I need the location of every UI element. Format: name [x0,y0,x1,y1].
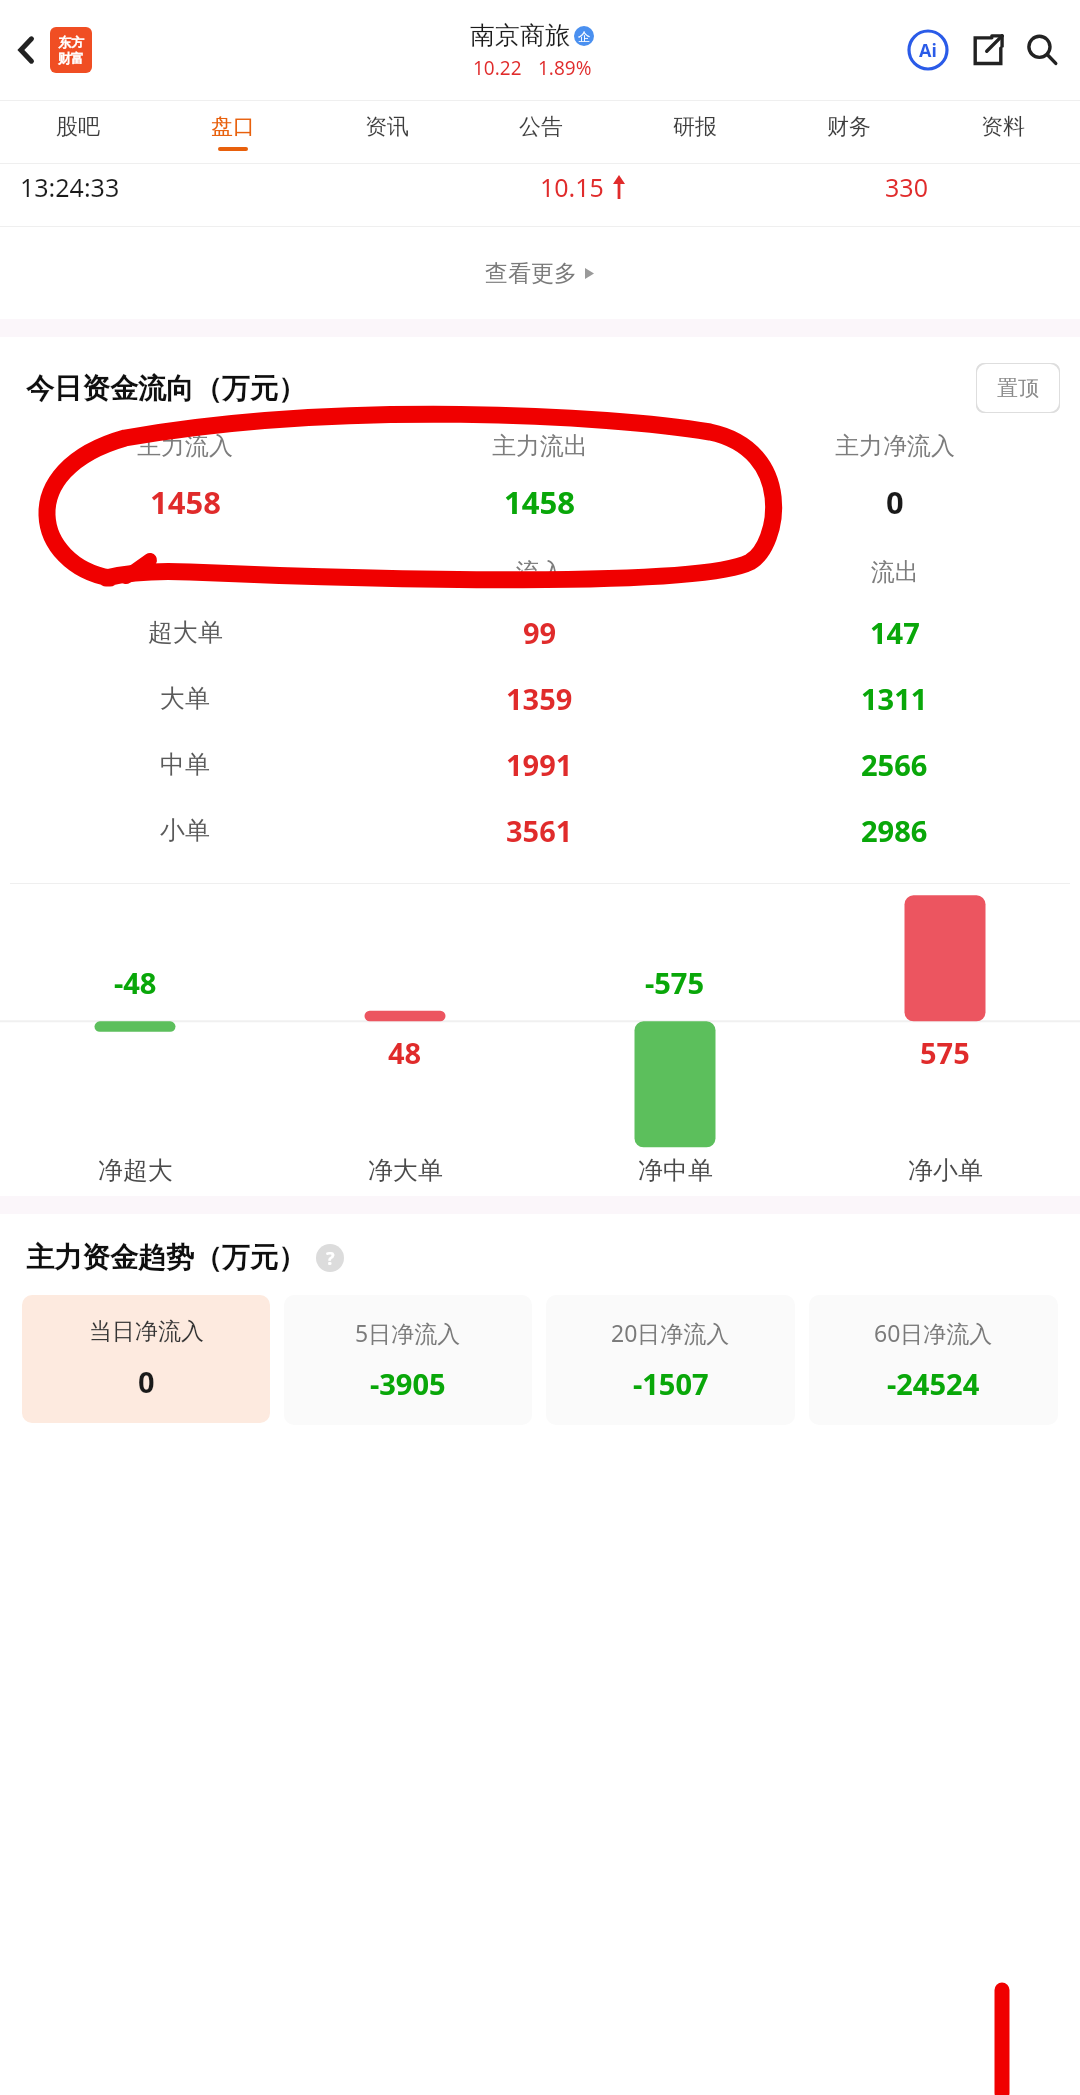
staticText: 净超大 [98,1155,173,1186]
staticText: 0 [138,1362,155,1401]
staticText: ? [326,1246,335,1271]
button[interactable]: 盘口 [155,101,310,163]
button[interactable]: Back [2,25,52,75]
button[interactable]: 主力流入 [8,431,362,523]
button[interactable]: 资讯 [310,101,464,163]
staticText: 1458 [150,481,221,523]
staticText: 盘口 [211,113,255,141]
button[interactable]: 置顶 [976,363,1060,413]
staticText: 财务 [827,113,871,141]
staticText: 主力流入 [137,431,233,461]
staticText: 575 [920,1033,970,1072]
button[interactable]: 60日净流入 [809,1295,1058,1425]
staticText: 3561 [506,811,573,850]
button[interactable]: Search [1016,24,1068,76]
staticText: 净小单 [908,1155,983,1186]
button[interactable]: 查看更多 [0,227,1080,319]
staticText: -24524 [887,1364,980,1403]
staticText: 48 [388,1033,422,1072]
staticText: 1.89% [538,55,592,81]
staticText: 13:24:33 [20,170,412,204]
staticText: 1311 [861,679,928,718]
staticText: -48 [114,963,157,1002]
staticText: 流入 [516,557,564,587]
staticText: 主力净流入 [835,431,955,461]
staticText: 南京商旅 [470,20,570,51]
staticText: 2566 [861,745,928,784]
staticText: 1991 [506,745,573,784]
staticText: 研报 [673,113,717,141]
button[interactable]: 20日净流入 [546,1295,795,1425]
staticText: 330 [753,170,1060,204]
staticText: 主力资金趋势（万元） [26,1240,306,1275]
button[interactable]: 主力流出 [362,431,717,523]
staticText: 置顶 [997,375,1039,401]
staticText: 60日净流入 [874,1317,993,1348]
staticText: 查看更多 [485,259,577,288]
button[interactable]: AI assistant [902,24,954,76]
staticText: 今日资金流向（万元） [26,371,306,406]
staticText: 企 [578,29,590,44]
staticText: 2986 [861,811,928,850]
button[interactable]: Help [316,1244,344,1272]
staticText: 5日净流入 [355,1317,461,1348]
staticText: 20日净流入 [611,1317,730,1348]
button[interactable]: 5日净流入 [284,1295,532,1425]
button[interactable]: 主力净流入 [717,431,1072,523]
staticText: 公告 [519,113,563,141]
staticText: 大单 [160,683,210,714]
staticText: 99 [523,613,557,652]
staticText: 主力流出 [492,431,588,461]
staticText: 中单 [160,749,210,780]
staticText: 10.22 [473,55,522,81]
button[interactable]: 超大单 [8,599,1072,665]
button[interactable]: Share [962,24,1014,76]
button[interactable]: 小单 [8,797,1072,863]
staticText: -3905 [370,1364,446,1403]
staticText: 财富 [58,50,84,66]
button[interactable]: East Money [50,27,92,73]
staticText: 净大单 [368,1155,443,1186]
button[interactable]: 大单 [8,665,1072,731]
staticText: 超大单 [148,617,223,648]
staticText: 资讯 [365,113,409,141]
button[interactable]: 资料 [926,101,1080,163]
staticText: 东方 [58,34,84,50]
button[interactable]: 中单 [8,731,1072,797]
staticText: Ai [919,38,937,63]
staticText: -1507 [633,1364,709,1403]
staticText: 流出 [871,557,919,587]
staticText: 1359 [506,679,573,718]
staticText: 小单 [160,815,210,846]
staticText: 净中单 [638,1155,713,1186]
staticText: 资料 [981,113,1025,141]
staticText: 当日净流入 [89,1317,204,1346]
staticText: 股吧 [56,113,100,141]
button[interactable]: 财务 [772,101,926,163]
staticText: -575 [645,963,705,1002]
button[interactable]: 研报 [618,101,772,163]
staticText: 147 [870,613,920,652]
staticText: 0 [886,481,904,523]
staticText: 10.15 [540,170,604,204]
button[interactable]: 股吧 [0,101,155,163]
button[interactable]: 当日净流入 [22,1295,270,1423]
staticText: 1458 [504,481,575,523]
button[interactable]: 公告 [464,101,618,163]
